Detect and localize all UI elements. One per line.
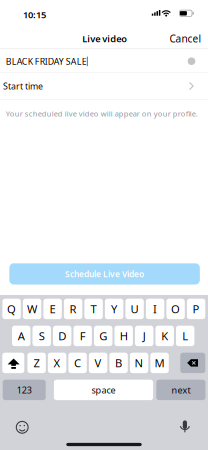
- button[interactable]: next: [156, 380, 205, 400]
- staticText: S: [39, 328, 45, 344]
- staticText: A: [18, 328, 25, 344]
- staticText: Your scheduled live video will appear on…: [6, 108, 198, 119]
- staticText: BLACK FRIDAY SALE: [6, 55, 87, 67]
- button[interactable]: N: [130, 353, 148, 373]
- button[interactable]: L: [176, 326, 194, 346]
- button[interactable]: M: [150, 353, 169, 373]
- staticText: C: [74, 355, 81, 371]
- staticText: U: [131, 301, 139, 317]
- button[interactable]: U: [125, 299, 144, 319]
- button[interactable]: P: [187, 299, 205, 319]
- staticText: N: [135, 355, 144, 371]
- button[interactable]: I: [146, 299, 164, 319]
- staticText: next: [171, 384, 190, 396]
- staticText: Live video: [82, 32, 127, 45]
- staticText: R: [70, 301, 77, 317]
- button[interactable]: Dictate: [176, 418, 194, 436]
- button[interactable]: D: [53, 326, 71, 346]
- button[interactable]: B: [109, 353, 128, 373]
- button[interactable]: Start time: [0, 73, 208, 99]
- staticText: F: [80, 328, 86, 344]
- button[interactable]: V: [89, 353, 107, 373]
- button[interactable]: Q: [2, 299, 21, 319]
- staticText: P: [193, 301, 200, 317]
- button[interactable]: E: [43, 299, 62, 319]
- button[interactable]: H: [114, 326, 133, 346]
- staticText: H: [120, 328, 128, 344]
- button[interactable]: X: [48, 353, 66, 373]
- button[interactable]: F: [73, 326, 92, 346]
- staticText: M: [155, 355, 165, 371]
- button[interactable]: O: [166, 299, 185, 319]
- staticText: space: [91, 384, 115, 396]
- staticText: I: [153, 301, 157, 317]
- staticText: W: [27, 301, 37, 317]
- staticText: L: [182, 328, 188, 344]
- button[interactable]: Shift: [2, 353, 24, 373]
- staticText: 123: [17, 384, 32, 396]
- button[interactable]: A: [12, 326, 30, 346]
- staticText: 10:15: [23, 8, 46, 21]
- staticText: Cancel: [170, 32, 202, 45]
- staticText: O: [171, 301, 180, 317]
- button[interactable]: Schedule Live Video: [9, 263, 200, 284]
- button[interactable]: 123: [3, 380, 46, 400]
- button[interactable]: Emoji: [13, 418, 31, 436]
- staticText: X: [54, 355, 61, 371]
- button[interactable]: Delete: [180, 353, 205, 373]
- staticText: J: [143, 328, 146, 344]
- button[interactable]: R: [64, 299, 82, 319]
- button[interactable]: Clear text: [183, 53, 199, 69]
- staticText: T: [91, 301, 97, 317]
- staticText: Q: [7, 301, 16, 317]
- staticText: V: [95, 355, 102, 371]
- staticText: E: [50, 301, 56, 317]
- button[interactable]: J: [135, 326, 153, 346]
- staticText: Y: [111, 301, 117, 317]
- button[interactable]: G: [94, 326, 112, 346]
- staticText: Start time: [3, 80, 43, 92]
- staticText: B: [115, 355, 122, 371]
- button[interactable]: Z: [27, 353, 46, 373]
- button[interactable]: W: [23, 299, 41, 319]
- button[interactable]: T: [84, 299, 103, 319]
- staticText: D: [58, 328, 66, 344]
- staticText: K: [161, 328, 168, 344]
- button[interactable]: C: [68, 353, 87, 373]
- staticText: Schedule Live Video: [65, 268, 144, 280]
- button[interactable]: S: [32, 326, 51, 346]
- button[interactable]: space: [54, 380, 153, 400]
- button[interactable]: K: [155, 326, 174, 346]
- staticText: G: [99, 328, 107, 344]
- button[interactable]: Cancel: [162, 29, 202, 49]
- staticText: Z: [34, 355, 40, 371]
- button[interactable]: Y: [105, 299, 123, 319]
